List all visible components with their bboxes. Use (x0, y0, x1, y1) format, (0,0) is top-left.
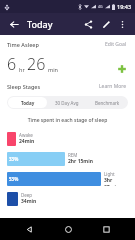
button[interactable]: Awake (7, 131, 128, 146)
button[interactable]: Back (20, 220, 38, 238)
button[interactable]: More options (115, 17, 129, 31)
button[interactable]: 53% (7, 171, 128, 186)
button[interactable]: Home (59, 220, 77, 238)
staticText: 26 (27, 53, 46, 75)
staticText: 30 Day Avg (55, 100, 79, 106)
staticText: 24min (19, 138, 35, 145)
staticText: Light (104, 171, 115, 177)
staticText: 33% (9, 156, 19, 162)
button[interactable]: Today (8, 97, 47, 108)
staticText: 19:43 (117, 3, 132, 10)
staticText: min (48, 66, 58, 73)
button[interactable]: Edit (98, 16, 114, 32)
button[interactable]: Sleep goal star (116, 63, 128, 75)
button[interactable]: Edit Goal (104, 40, 128, 49)
staticText: Today (27, 18, 53, 30)
staticText: Edit Goal (105, 41, 127, 48)
staticText: 4G (98, 4, 103, 9)
staticText: 53% (9, 176, 19, 182)
staticText: hr (19, 66, 25, 73)
staticText: 34min (21, 198, 37, 205)
staticText: Time Asleep (7, 41, 39, 48)
staticText: Awake (19, 132, 33, 138)
staticText: 2hr 15min (68, 158, 93, 165)
button[interactable]: Share (80, 16, 96, 32)
staticText: 6 (7, 53, 17, 75)
staticText: Learn More (99, 83, 127, 90)
button[interactable]: Deep (7, 191, 128, 206)
button[interactable]: Recent apps (97, 220, 115, 238)
staticText: Benchmark (95, 100, 120, 106)
staticText: Today (21, 100, 35, 106)
staticText: Time spent in each stage of sleep (0, 117, 135, 124)
staticText: REM (68, 152, 78, 158)
button[interactable]: 33% (7, 151, 128, 166)
staticText: 3hr 37min (104, 177, 128, 186)
button[interactable]: Benchmark (87, 97, 127, 108)
button[interactable]: Learn More (98, 82, 128, 91)
button[interactable]: 30 Day Avg (47, 97, 87, 108)
button[interactable]: Back (6, 16, 22, 32)
staticText: Deep (21, 192, 33, 198)
staticText: Sleep Stages (7, 83, 41, 90)
